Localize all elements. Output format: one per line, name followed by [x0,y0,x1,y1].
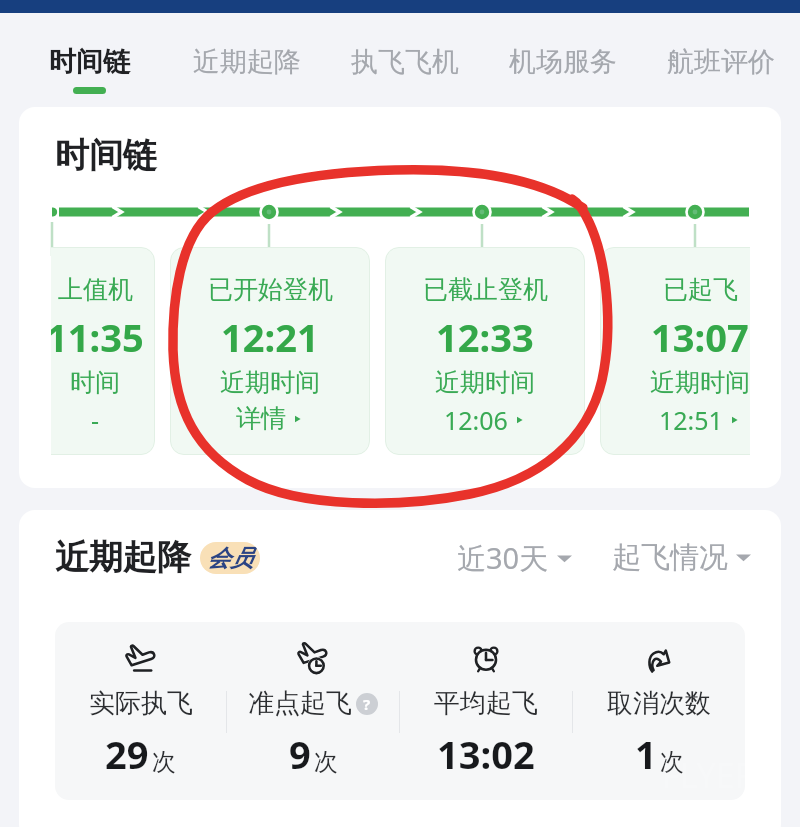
button[interactable]: 已开始登机 [170,247,370,455]
button[interactable]: 实际执飞 [55,622,226,800]
button[interactable]: 执飞飞机 [326,13,484,113]
staticText: 近期起降 [55,536,191,579]
staticText: 时间链 [49,45,130,79]
staticText: 起飞情况 [612,539,728,576]
staticText: 已开始登机 [208,274,333,305]
button[interactable]: 起飞情况 [612,539,751,576]
button[interactable]: 取消次数 [573,622,745,800]
button[interactable]: 上值机 [51,247,155,455]
staticText: 详情 [236,403,286,434]
staticText: FLYERT [662,752,775,798]
staticText: 会员 [207,544,253,573]
staticText: 12:33 [436,311,534,363]
staticText: 次 [314,747,338,777]
staticText: 近期起降 [193,45,301,79]
button[interactable]: 航班评价 [642,13,800,113]
button[interactable]: 已截止登机 [385,247,585,455]
staticText: 平均起飞 [434,687,538,720]
staticText: 近期时间 [220,367,320,398]
staticText: 12:21 [221,311,319,363]
staticText: 9 [289,728,311,780]
button[interactable]: Help [356,693,378,715]
staticText: 准点起飞 [248,687,352,720]
staticText: 上值机 [58,274,133,305]
button[interactable]: 近30天 [457,538,572,578]
staticText: 近期时间 [435,367,535,398]
staticText: 航班评价 [667,45,775,79]
staticText: 12:51 [659,403,723,437]
staticText: 已起飞 [663,274,738,305]
staticText: 时间链 [55,134,157,177]
staticText: 已截止登机 [423,274,548,305]
staticText: 次 [152,747,176,777]
button[interactable]: 准点起飞 [227,622,399,800]
button[interactable]: 近期起降 [168,13,326,113]
staticText: 时间 [70,367,120,398]
staticText: 取消次数 [607,687,711,720]
staticText: 执飞飞机 [351,45,459,79]
button[interactable]: 已起飞 [600,247,750,455]
staticText: 13:02 [437,728,535,780]
staticText: 13:07 [651,311,749,363]
staticText: 29 [105,728,149,780]
staticText: 实际执飞 [89,687,193,720]
button[interactable]: 时间链 [11,13,168,113]
staticText: 机场服务 [509,45,617,79]
staticText: 12:06 [444,403,508,437]
staticText: 11:35 [51,311,144,363]
staticText: 次 [660,747,684,777]
staticText: 1 [635,728,657,780]
staticText: 近期时间 [650,367,750,398]
staticText: - [91,403,100,437]
staticText: 近30天 [457,538,549,578]
button[interactable]: 平均起飞 [400,622,572,800]
staticText: ? [363,694,371,714]
button[interactable]: 会员 [200,542,260,574]
button[interactable]: 机场服务 [484,13,642,113]
